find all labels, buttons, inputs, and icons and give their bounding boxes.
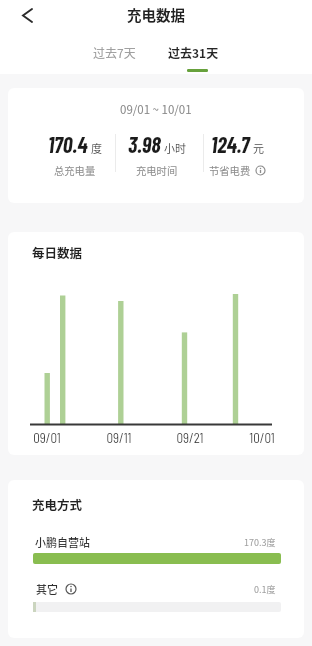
- button[interactable]: [255, 165, 266, 176]
- staticText: 0.1度: [254, 583, 276, 596]
- staticText: 09/21: [176, 430, 204, 446]
- button[interactable]: [65, 583, 77, 595]
- staticText: 度: [91, 140, 102, 156]
- staticText: 170.3度: [244, 536, 276, 549]
- staticText: 充电数据: [127, 4, 185, 25]
- staticText: 小时: [164, 140, 186, 156]
- staticText: 09/11: [106, 430, 132, 446]
- staticText: 充电方式: [32, 495, 83, 513]
- staticText: 充电时间: [136, 163, 178, 178]
- staticText: 总充电量: [54, 163, 96, 178]
- staticText: 过去7天: [93, 44, 136, 61]
- button[interactable]: 过去31天: [168, 44, 219, 61]
- staticText: 10/01: [249, 430, 275, 446]
- button[interactable]: 过去7天: [93, 44, 136, 61]
- staticText: 3.98: [128, 131, 161, 157]
- staticText: 元: [253, 140, 264, 156]
- staticText: 124.7: [211, 131, 250, 157]
- staticText: 09/01: [33, 430, 61, 446]
- staticText: 过去31天: [168, 44, 219, 61]
- staticText: 节省电费: [209, 163, 251, 178]
- staticText: 小鹏自营站: [35, 534, 90, 550]
- staticText: 每日数据: [32, 243, 83, 261]
- staticText: 09/01 ~ 10/01: [120, 101, 192, 118]
- staticText: 其它: [36, 581, 58, 597]
- staticText: 170.4: [48, 131, 88, 157]
- button[interactable]: [13, 1, 41, 29]
